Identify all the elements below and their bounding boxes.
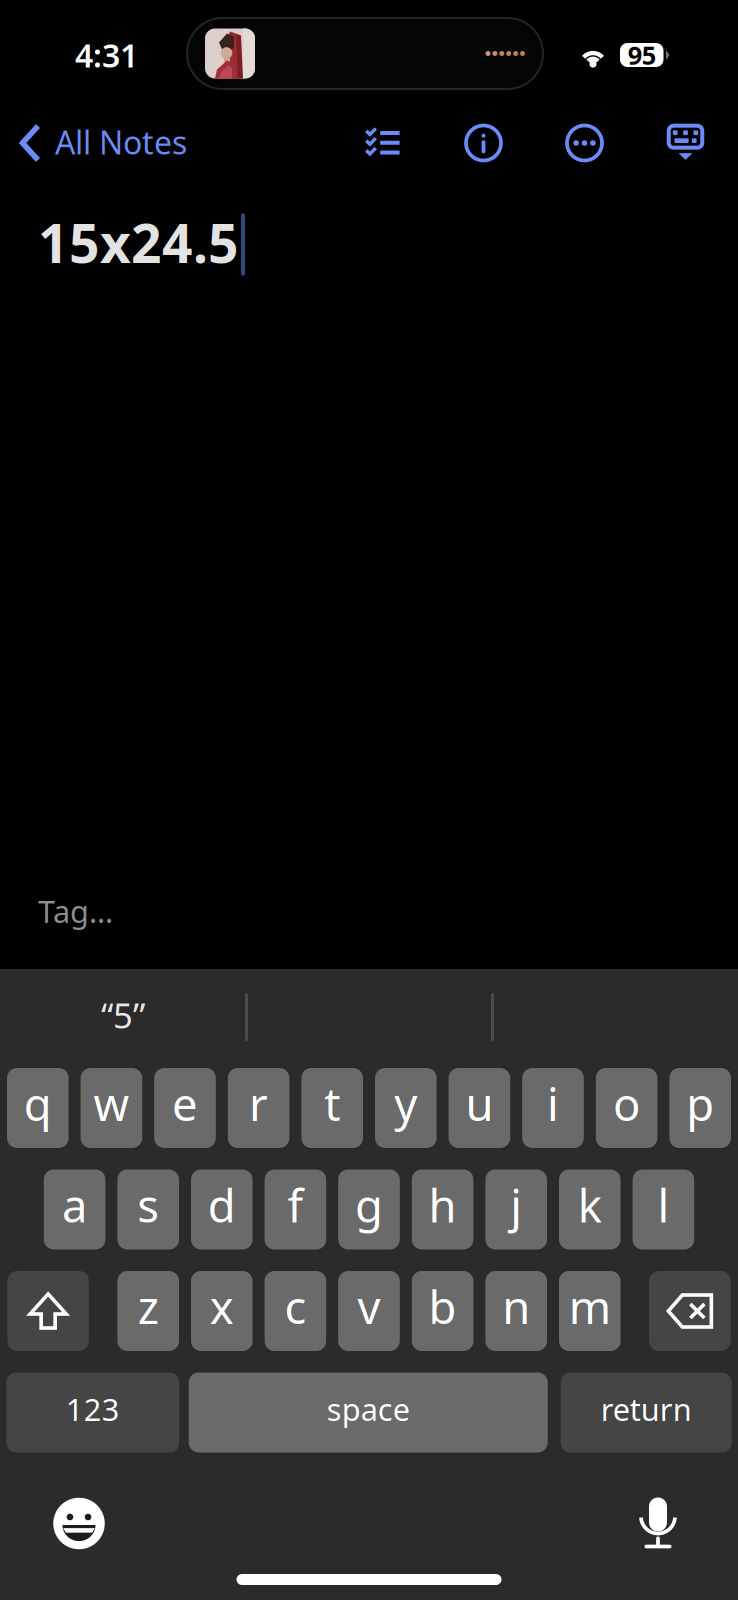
staticText: “5” [101,992,145,1038]
button[interactable]: t [301,1068,363,1148]
staticText: p [686,1073,714,1134]
staticText: return [601,1389,692,1429]
staticText: 123 [66,1389,120,1429]
button[interactable]: q [7,1068,69,1148]
button[interactable]: f [265,1169,326,1249]
staticText: i [547,1073,559,1134]
staticText: l [657,1175,669,1235]
button[interactable]: w [81,1068,142,1148]
button[interactable]: Info [433,110,534,176]
button[interactable]: h [412,1169,473,1249]
staticText: r [249,1073,268,1134]
staticText: m [569,1276,611,1337]
staticText: w [93,1073,129,1134]
button[interactable]: a [44,1169,105,1249]
button[interactable]: l [633,1169,694,1249]
staticText: x [210,1276,234,1337]
staticText: e [172,1073,198,1134]
button[interactable]: Dictation [613,1486,703,1560]
button[interactable]: Shift [7,1271,89,1351]
button[interactable]: All Notes [0,110,199,176]
button[interactable]: n [485,1271,547,1351]
button[interactable]: “5” [0,969,246,1055]
button[interactable]: s [117,1169,179,1249]
button[interactable]: e [154,1068,216,1148]
button[interactable]: k [559,1169,621,1249]
button[interactable]: 123 [6,1372,179,1452]
button[interactable]: Emoji [34,1486,124,1560]
button[interactable]: u [449,1068,510,1148]
staticText: u [465,1073,493,1134]
button[interactable]: i [522,1068,584,1148]
staticText: 4:31 [75,34,138,76]
staticText: o [613,1073,640,1134]
button[interactable]: b [412,1271,473,1351]
button[interactable]: c [265,1271,326,1351]
button[interactable]: v [338,1271,400,1351]
button[interactable]: x [191,1271,253,1351]
button[interactable]: Checklist [332,110,433,176]
button[interactable]: d [191,1169,253,1249]
staticText: q [24,1073,52,1134]
button[interactable]: m [559,1271,621,1351]
button[interactable]: return [561,1372,732,1452]
button[interactable]: o [596,1068,657,1148]
staticText: n [502,1276,530,1337]
staticText: c [284,1276,306,1337]
staticText: h [429,1175,457,1235]
button[interactable]: Delete [649,1271,731,1351]
staticText: space [327,1389,410,1429]
staticText: k [578,1175,602,1235]
button[interactable]: g [338,1169,400,1249]
button[interactable]: space [189,1372,548,1452]
staticText: s [137,1175,159,1235]
button[interactable]: z [117,1271,179,1351]
staticText: All Notes [55,121,187,163]
staticText: v [357,1276,380,1337]
staticText: j [510,1175,522,1235]
staticText: 15x24.5 [38,207,239,278]
button[interactable]: p [669,1068,731,1148]
staticText: y [394,1073,417,1134]
staticText: b [429,1276,457,1337]
staticText: z [138,1276,159,1337]
button[interactable]: Tag... [0,885,738,937]
button[interactable]: y [375,1068,437,1148]
staticText: t [324,1073,340,1134]
button[interactable]: More [534,110,635,176]
staticText: Tag... [38,891,113,931]
staticText: g [355,1175,383,1235]
staticText: a [62,1175,87,1235]
button[interactable]: Hide Keyboard [635,110,736,176]
staticText: d [208,1175,236,1235]
button[interactable]: r [228,1068,289,1148]
staticText: f [287,1175,303,1235]
staticText: 95 [628,38,656,72]
button[interactable]: j [485,1169,547,1249]
